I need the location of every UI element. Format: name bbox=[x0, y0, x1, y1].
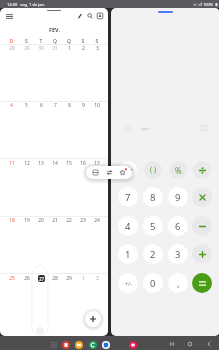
staticText: Q bbox=[48, 38, 62, 45]
staticText: 1 bbox=[125, 248, 131, 261]
staticText: ( ) bbox=[150, 165, 157, 175]
button[interactable]: Menu bbox=[4, 11, 15, 22]
button[interactable]: 1 bbox=[118, 244, 138, 264]
staticText: 100% bbox=[203, 2, 214, 7]
staticText: S bbox=[76, 38, 90, 45]
button[interactable]: Home bbox=[185, 339, 195, 349]
button[interactable]: Decimal bbox=[168, 273, 188, 293]
button[interactable]: 6 bbox=[40, 102, 43, 109]
button[interactable]: 4 bbox=[10, 102, 13, 109]
button[interactable]: 31 bbox=[52, 45, 58, 52]
staticText: 5 bbox=[150, 220, 156, 233]
staticText: 8 bbox=[150, 191, 156, 204]
button[interactable]: 12 bbox=[24, 160, 30, 167]
staticText: S bbox=[19, 38, 34, 45]
staticText: 12:00 seg, 1 de jan. bbox=[7, 2, 45, 7]
button[interactable]: 17 bbox=[94, 160, 100, 167]
button[interactable]: Plus bbox=[192, 244, 212, 264]
button[interactable]: 3 bbox=[96, 45, 99, 52]
button[interactable]: 2 bbox=[143, 244, 163, 264]
button[interactable]: 22 bbox=[66, 217, 72, 224]
button[interactable]: 15 bbox=[66, 160, 72, 167]
button[interactable]: Sign bbox=[118, 273, 138, 293]
staticText: T bbox=[34, 38, 48, 45]
button[interactable]: Keyboard bbox=[140, 125, 149, 133]
staticText: 0 bbox=[150, 277, 156, 290]
button[interactable]: 6 bbox=[168, 216, 188, 236]
button[interactable]: App bbox=[62, 341, 70, 349]
button[interactable]: App bbox=[89, 341, 97, 349]
button[interactable]: 28 bbox=[9, 45, 15, 52]
staticText: 6 bbox=[175, 220, 181, 233]
button[interactable]: 14 bbox=[52, 160, 58, 167]
button[interactable]: Favorites bbox=[119, 161, 137, 179]
button[interactable]: Split screen bbox=[91, 168, 100, 177]
button[interactable]: 29 bbox=[66, 275, 72, 282]
staticText: 7 bbox=[125, 191, 131, 204]
button[interactable]: 7 bbox=[118, 187, 138, 207]
button[interactable]: Equals bbox=[192, 273, 212, 293]
button[interactable]: 5 bbox=[143, 216, 163, 236]
button[interactable]: 8 bbox=[143, 187, 163, 207]
button[interactable]: 28 bbox=[52, 275, 58, 282]
button[interactable]: 16 bbox=[80, 160, 86, 167]
button[interactable]: Edit bbox=[75, 11, 85, 21]
button[interactable]: 27 bbox=[38, 275, 45, 282]
button[interactable]: 0 bbox=[143, 273, 163, 293]
staticText: , bbox=[177, 277, 180, 289]
staticText: 2 bbox=[150, 248, 156, 261]
button[interactable]: Parentheses bbox=[144, 161, 162, 179]
button[interactable]: Backspace bbox=[198, 124, 208, 132]
button[interactable]: 5 bbox=[25, 102, 28, 109]
button[interactable]: 23 bbox=[80, 217, 86, 224]
staticText: S bbox=[90, 38, 104, 45]
staticText: +/- bbox=[125, 280, 132, 287]
button[interactable]: 9 bbox=[168, 187, 188, 207]
button[interactable]: 19 bbox=[24, 217, 30, 224]
button[interactable]: App bbox=[75, 341, 83, 349]
button[interactable]: 10 bbox=[94, 102, 100, 109]
button[interactable]: 20 bbox=[38, 217, 44, 224]
button[interactable]: Recents bbox=[167, 339, 177, 349]
staticText: D bbox=[4, 38, 19, 45]
staticText: 27 bbox=[39, 276, 45, 282]
staticText: 3 bbox=[175, 248, 181, 261]
button[interactable]: Profile bbox=[95, 11, 105, 21]
button[interactable]: 4 bbox=[118, 216, 138, 236]
button[interactable]: 13 bbox=[38, 160, 44, 167]
button[interactable]: Percent bbox=[169, 161, 187, 179]
staticText: FEV. bbox=[49, 26, 60, 33]
staticText: Q bbox=[62, 38, 76, 45]
button[interactable]: 3 bbox=[168, 244, 188, 264]
button[interactable]: Settings bbox=[105, 168, 114, 177]
button[interactable]: History bbox=[124, 125, 132, 133]
button[interactable]: 21 bbox=[52, 217, 58, 224]
button[interactable]: Minus bbox=[192, 216, 212, 236]
button[interactable]: Back bbox=[204, 339, 214, 349]
button[interactable]: 7 bbox=[54, 102, 57, 109]
button[interactable]: 24 bbox=[94, 217, 100, 224]
button[interactable]: 11 bbox=[9, 160, 15, 167]
button[interactable]: App bbox=[102, 341, 110, 349]
button[interactable]: 2 bbox=[96, 275, 99, 282]
button[interactable]: 18 bbox=[9, 217, 15, 224]
button[interactable]: All apps bbox=[49, 340, 58, 349]
staticText: 9 bbox=[175, 191, 181, 204]
button[interactable]: Multiply bbox=[192, 187, 212, 207]
button[interactable]: 9 bbox=[82, 102, 85, 109]
button[interactable]: App bbox=[129, 341, 137, 349]
staticText: 4 bbox=[125, 220, 131, 233]
button[interactable]: Divide bbox=[193, 161, 211, 179]
button[interactable]: 8 bbox=[68, 102, 71, 109]
button[interactable]: Add event bbox=[85, 311, 101, 327]
button[interactable]: 30 bbox=[38, 45, 44, 52]
button[interactable]: 2 bbox=[82, 45, 85, 52]
button[interactable]: Search bbox=[85, 11, 95, 21]
button[interactable]: 1 bbox=[68, 45, 71, 52]
button[interactable]: Favorites bbox=[118, 168, 127, 177]
button[interactable]: 29 bbox=[24, 45, 30, 52]
button[interactable]: 25 bbox=[9, 275, 15, 282]
button[interactable]: 1 bbox=[82, 275, 85, 282]
staticText: % bbox=[175, 165, 182, 176]
button[interactable]: 26 bbox=[24, 275, 30, 282]
